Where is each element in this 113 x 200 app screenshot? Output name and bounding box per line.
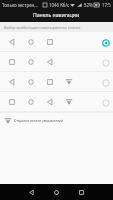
staticText: Только экстрен... [2, 2, 38, 8]
button[interactable]: Select navigation layout [100, 97, 111, 108]
staticText: Панель навигации [33, 12, 80, 19]
button[interactable]: Recent apps [69, 184, 94, 200]
staticText: 17:56 [102, 2, 111, 8]
button[interactable]: Select navigation layout [100, 37, 111, 48]
staticText: Выбор комбинации навигационных кнопок [4, 25, 81, 30]
button[interactable]: Select navigation layout [0, 52, 113, 72]
button[interactable]: Открытие панели уведомлений [0, 113, 113, 128]
button[interactable]: Select navigation layout [100, 57, 111, 68]
staticText: 52% [84, 2, 93, 8]
button[interactable]: Select navigation layout [100, 77, 111, 88]
button[interactable]: Select navigation layout [0, 92, 113, 112]
staticText: 1046 Кб/с [49, 2, 70, 8]
button[interactable]: Home [44, 184, 69, 200]
button[interactable]: Back [19, 184, 44, 200]
button[interactable]: Select navigation layout [0, 32, 113, 52]
button[interactable]: Select navigation layout [0, 72, 113, 92]
staticText: Открытие панели уведомлений [14, 119, 64, 123]
